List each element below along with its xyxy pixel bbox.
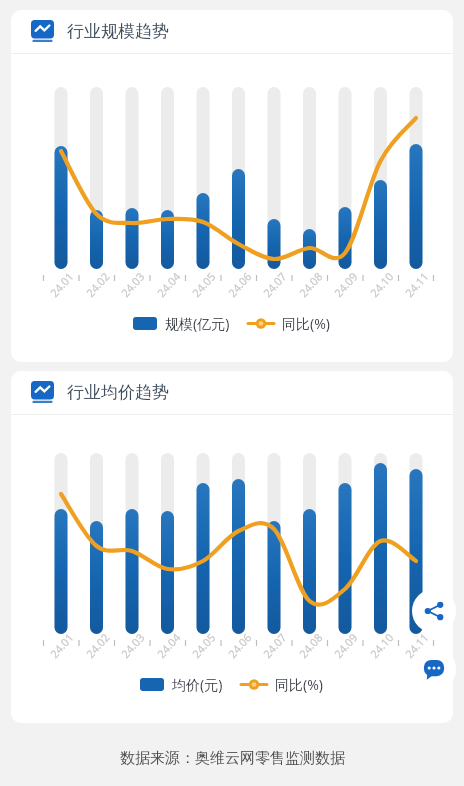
staticText: 24.09 bbox=[330, 269, 361, 300]
staticText: 24.02 bbox=[82, 630, 113, 661]
staticText: 同比(%) bbox=[275, 675, 324, 694]
staticText: 24.10 bbox=[366, 630, 397, 661]
button[interactable]: 同比(%) bbox=[248, 314, 331, 333]
staticText: 24.05 bbox=[188, 630, 219, 661]
staticText: 行业规模趋势 bbox=[67, 21, 169, 42]
staticText: 24.01 bbox=[46, 630, 77, 661]
staticText: 24.01 bbox=[46, 269, 77, 300]
button[interactable]: 规模(亿元) bbox=[133, 314, 230, 333]
button[interactable]: 均价(元) bbox=[140, 675, 223, 694]
staticText: 24.06 bbox=[224, 269, 255, 300]
staticText: 24.09 bbox=[330, 630, 361, 661]
staticText: 24.08 bbox=[295, 269, 326, 300]
staticText: 行业均价趋势 bbox=[67, 382, 169, 403]
staticText: 24.07 bbox=[259, 269, 290, 300]
staticText: 均价(元) bbox=[172, 675, 223, 694]
staticText: 24.04 bbox=[153, 630, 184, 661]
button[interactable]: Comments bbox=[412, 647, 456, 691]
button[interactable]: 行业均价趋势 bbox=[11, 371, 453, 414]
staticText: 24.04 bbox=[153, 269, 184, 300]
staticText: 24.07 bbox=[259, 630, 290, 661]
staticText: 24.06 bbox=[224, 630, 255, 661]
button[interactable]: 同比(%) bbox=[241, 675, 324, 694]
button[interactable]: 行业规模趋势 bbox=[11, 10, 453, 53]
staticText: 24.03 bbox=[117, 269, 148, 300]
staticText: 规模(亿元) bbox=[165, 314, 230, 333]
staticText: 同比(%) bbox=[282, 314, 331, 333]
staticText: 24.08 bbox=[295, 630, 326, 661]
staticText: 24.11 bbox=[401, 269, 432, 300]
staticText: 24.10 bbox=[366, 269, 397, 300]
staticText: 24.11 bbox=[401, 630, 432, 661]
staticText: 24.05 bbox=[188, 269, 219, 300]
button[interactable]: Share bbox=[412, 589, 456, 633]
staticText: 数据来源：奥维云网零售监测数据 bbox=[120, 749, 345, 768]
staticText: 24.02 bbox=[82, 269, 113, 300]
staticText: 24.03 bbox=[117, 630, 148, 661]
